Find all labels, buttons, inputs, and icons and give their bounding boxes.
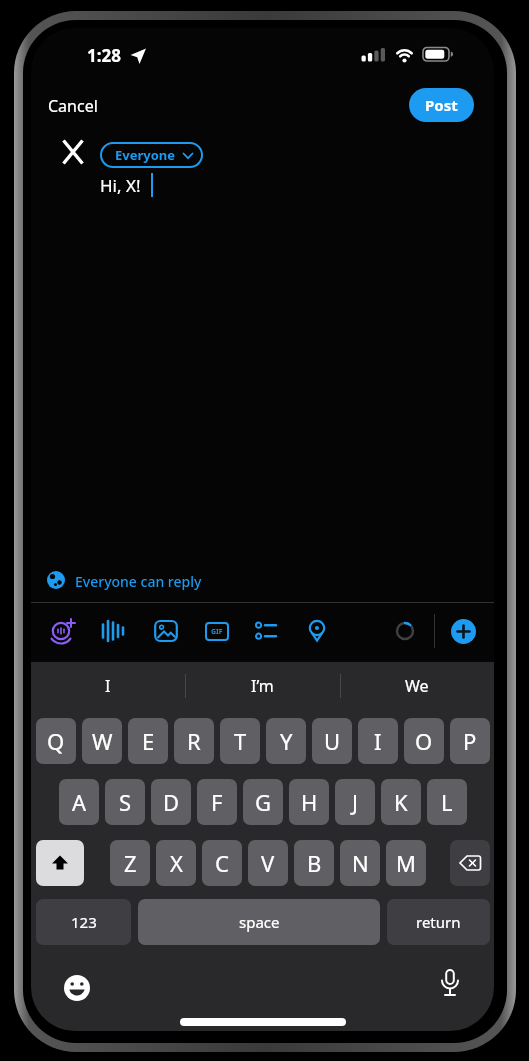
staticText: 1:28	[87, 44, 121, 67]
button[interactable]: We	[340, 662, 494, 710]
button[interactable]: Everyone can reply	[41, 565, 241, 595]
button[interactable]: I	[358, 718, 398, 764]
staticText: D	[163, 787, 180, 817]
staticText: C	[215, 848, 229, 878]
staticText: R	[187, 726, 201, 756]
staticText: O	[415, 726, 433, 756]
staticText: E	[142, 726, 155, 756]
button[interactable]: B	[294, 840, 334, 886]
staticText: I	[105, 675, 111, 697]
button[interactable]: E	[128, 718, 168, 764]
staticText: Everyone can reply	[75, 572, 202, 591]
button[interactable]: U	[312, 718, 352, 764]
staticText: T	[234, 726, 247, 756]
staticText: space	[239, 912, 280, 932]
button[interactable]: X	[156, 840, 196, 886]
staticText: I’m	[251, 675, 274, 697]
button[interactable]: Z	[110, 840, 150, 886]
button[interactable]: F	[197, 779, 237, 825]
button[interactable]: P	[450, 718, 490, 764]
staticText: X	[170, 848, 183, 878]
button[interactable]: return	[387, 899, 490, 945]
button[interactable]: I’m	[185, 662, 340, 710]
button[interactable]: J	[335, 779, 375, 825]
staticText: J	[352, 787, 359, 817]
button[interactable]	[36, 840, 84, 886]
staticText: We	[405, 675, 429, 697]
button[interactable]: Everyone	[100, 142, 203, 168]
button[interactable]	[436, 968, 464, 1002]
staticText: Post	[425, 95, 458, 115]
staticText: V	[261, 848, 275, 878]
staticText: I	[374, 726, 382, 756]
button[interactable]: K	[381, 779, 421, 825]
staticText: Y	[280, 726, 293, 756]
button[interactable]	[61, 972, 93, 1004]
button[interactable]: A	[59, 779, 99, 825]
staticText: L	[441, 787, 453, 817]
button[interactable]	[450, 840, 490, 886]
button[interactable]: R	[174, 718, 214, 764]
staticText: F	[211, 787, 223, 817]
button[interactable]: Cancel	[41, 90, 111, 120]
staticText: M	[396, 848, 416, 878]
button[interactable]	[254, 619, 278, 643]
staticText: S	[119, 787, 132, 817]
button[interactable]	[305, 619, 329, 643]
button[interactable]	[49, 617, 77, 645]
button[interactable]: T	[220, 718, 260, 764]
staticText: W	[92, 726, 113, 756]
staticText: Q	[47, 726, 65, 756]
staticText: P	[463, 726, 477, 756]
staticText: G	[255, 787, 272, 817]
staticText: Hi, X!	[100, 174, 141, 197]
button[interactable]: Q	[36, 718, 76, 764]
button[interactable]: N	[340, 840, 380, 886]
button[interactable]: G	[243, 779, 283, 825]
button[interactable]: V	[248, 840, 288, 886]
staticText: N	[352, 848, 369, 878]
staticText: return	[416, 912, 461, 932]
button[interactable]: I	[31, 662, 185, 710]
button[interactable]: GIF	[205, 622, 229, 641]
staticText: Cancel	[48, 95, 98, 117]
staticText: Z	[124, 848, 137, 878]
button[interactable]: Post	[409, 88, 474, 122]
button[interactable]: Y	[266, 718, 306, 764]
staticText: H	[301, 787, 318, 817]
staticText: K	[394, 787, 408, 817]
staticText: GIF	[211, 627, 223, 637]
staticText: Everyone	[115, 146, 176, 164]
button[interactable]	[154, 619, 178, 643]
staticText: 123	[71, 912, 97, 932]
button[interactable]: 123	[36, 899, 131, 945]
button[interactable]: space	[138, 899, 380, 945]
staticText: A	[72, 787, 87, 817]
button[interactable]: L	[427, 779, 467, 825]
button[interactable]	[451, 619, 476, 644]
button[interactable]	[101, 619, 125, 643]
button[interactable]: H	[289, 779, 329, 825]
button[interactable]: W	[82, 718, 122, 764]
button[interactable]: S	[105, 779, 145, 825]
button[interactable]: C	[202, 840, 242, 886]
staticText: B	[307, 848, 322, 878]
staticText: U	[324, 726, 341, 756]
button[interactable]: D	[151, 779, 191, 825]
button[interactable]: M	[386, 840, 426, 886]
button[interactable]: O	[404, 718, 444, 764]
